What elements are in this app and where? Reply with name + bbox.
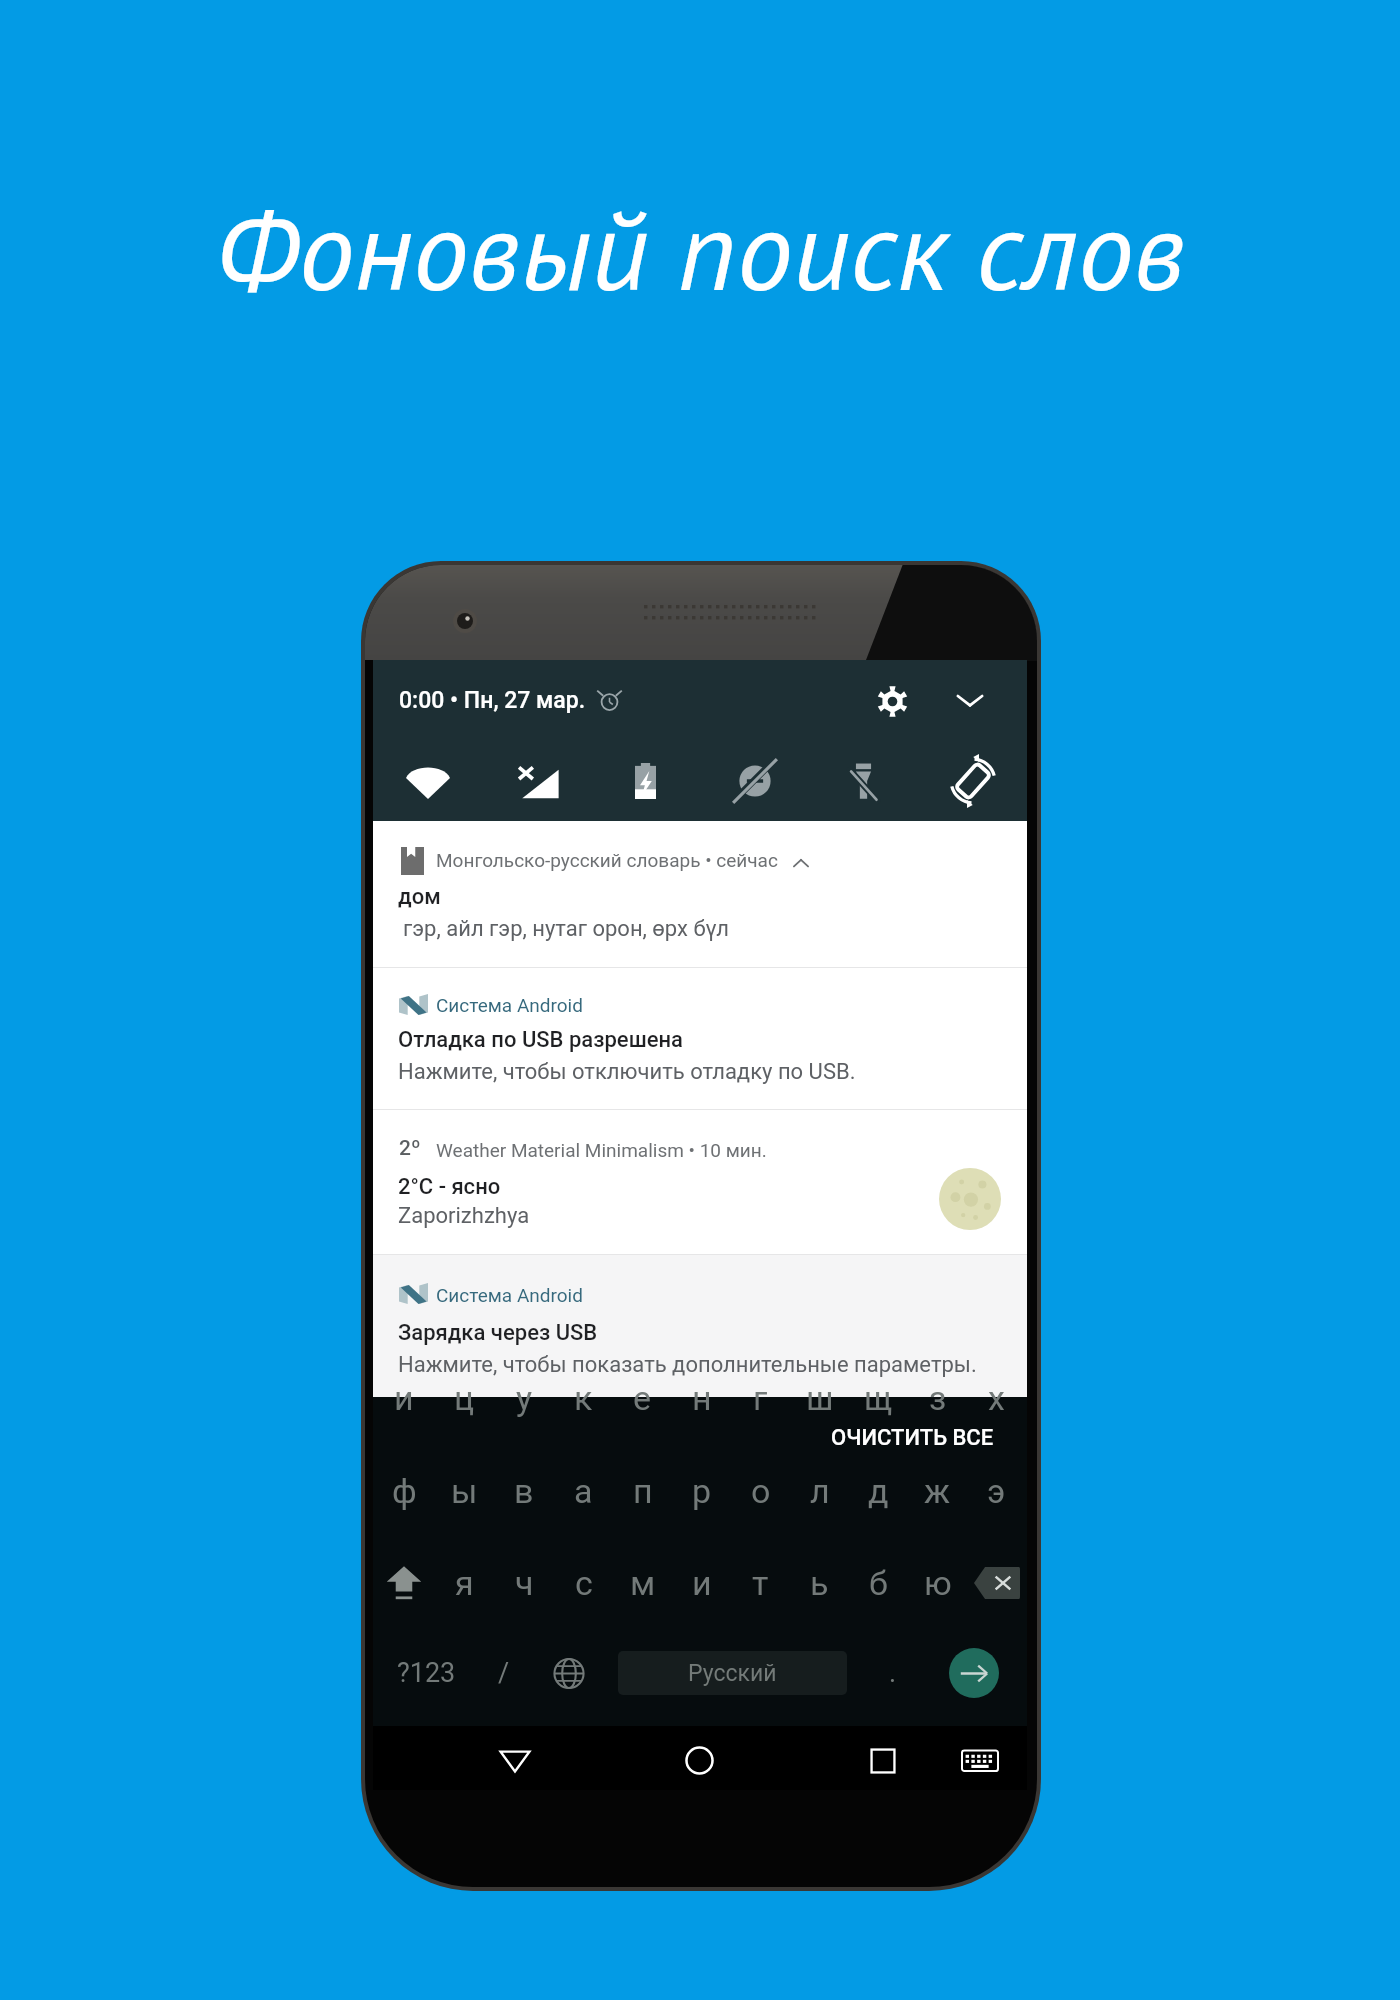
button[interactable]: Battery — [591, 741, 700, 821]
staticText: Монгольско-русский словарь • сейчас — [436, 849, 778, 871]
button[interactable]: Монгольско-русский словарь • сейчас — [373, 821, 1027, 967]
button[interactable]: Change language — [544, 1643, 594, 1703]
button[interactable]: я — [434, 1559, 494, 1607]
staticText: Русский — [688, 1660, 777, 1687]
staticText: ц — [454, 1378, 475, 1418]
button[interactable]: м — [613, 1559, 672, 1607]
staticText: х — [988, 1378, 1005, 1418]
button[interactable]: 2º — [373, 1110, 1027, 1254]
button[interactable]: о — [731, 1467, 790, 1515]
button[interactable]: щ — [849, 1374, 908, 1422]
staticText: е — [633, 1378, 652, 1418]
staticText: б — [869, 1563, 888, 1603]
button[interactable]: ж — [908, 1467, 967, 1515]
button[interactable]: Система Android — [373, 1255, 1027, 1397]
button[interactable]: ч — [494, 1559, 554, 1607]
staticText: Система Android — [436, 994, 583, 1016]
staticText: Фоновый поиск слов — [0, 176, 1400, 321]
staticText: гэр, айл гэр, нутаг орон, өрх бүл — [403, 916, 729, 942]
staticText: к — [574, 1378, 593, 1418]
button[interactable]: Wi-Fi — [373, 741, 482, 821]
button[interactable]: Mobile data — [482, 741, 591, 821]
staticText: п — [633, 1471, 653, 1511]
button[interactable]: / — [484, 1643, 524, 1703]
button[interactable]: Do not disturb — [700, 741, 809, 821]
staticText: а — [574, 1471, 593, 1511]
button[interactable]: Recents — [847, 1731, 919, 1790]
button[interactable]: х — [967, 1374, 1026, 1422]
staticText: г — [753, 1378, 768, 1418]
staticText: з — [929, 1378, 947, 1418]
button[interactable]: т — [731, 1559, 790, 1607]
staticText: Отладка по USB разрешена — [398, 1027, 684, 1053]
button[interactable]: н — [672, 1374, 731, 1422]
button[interactable]: г — [731, 1374, 790, 1422]
button[interactable]: ц — [434, 1374, 494, 1422]
staticText: в — [514, 1471, 534, 1511]
button[interactable]: ы — [434, 1467, 494, 1515]
staticText: и — [692, 1563, 712, 1603]
button[interactable]: р — [672, 1467, 731, 1515]
staticText: дом — [398, 884, 441, 910]
button[interactable]: Back — [479, 1731, 551, 1790]
button[interactable]: и — [672, 1559, 731, 1607]
staticText: э — [987, 1471, 1006, 1511]
staticText: т — [752, 1563, 769, 1603]
staticText: ж — [924, 1471, 951, 1511]
button[interactable]: л — [790, 1467, 849, 1515]
staticText: ф — [392, 1471, 417, 1511]
button[interactable]: Система Android — [373, 968, 1027, 1109]
button[interactable]: . — [873, 1643, 913, 1703]
button[interactable]: Auto rotate — [918, 741, 1027, 821]
button[interactable]: Русский — [618, 1651, 847, 1695]
staticText: ь — [810, 1563, 829, 1603]
button[interactable]: Settings — [861, 670, 923, 732]
button[interactable]: ?123 — [395, 1643, 457, 1703]
staticText: ?123 — [397, 1657, 456, 1689]
button[interactable]: ш — [790, 1374, 849, 1422]
staticText: ю — [924, 1563, 952, 1603]
staticText: . — [889, 1657, 897, 1689]
button[interactable]: в — [494, 1467, 554, 1515]
button[interactable]: б — [849, 1559, 908, 1607]
staticText: 2º — [399, 1136, 421, 1161]
button[interactable]: п — [613, 1467, 672, 1515]
staticText: 0:00 • Пн, 27 мар. — [399, 687, 586, 714]
button[interactable]: е — [613, 1374, 672, 1422]
button[interactable]: у — [494, 1374, 554, 1422]
button[interactable]: Keyboard — [948, 1731, 1012, 1790]
staticText: л — [810, 1471, 830, 1511]
staticText: у — [516, 1378, 533, 1418]
button[interactable]: ь — [790, 1559, 849, 1607]
button[interactable]: Backspace — [967, 1559, 1026, 1607]
button[interactable]: э — [967, 1467, 1026, 1515]
staticText: р — [692, 1471, 712, 1511]
button[interactable]: с — [554, 1559, 613, 1607]
button[interactable]: а — [554, 1467, 613, 1515]
staticText: / — [498, 1657, 510, 1689]
button[interactable]: Enter — [949, 1648, 999, 1698]
staticText: щ — [864, 1378, 893, 1418]
button[interactable]: Flashlight — [809, 741, 918, 821]
button[interactable]: ОЧИСТИТЬ ВСЕ — [831, 1425, 994, 1451]
staticText: я — [455, 1563, 474, 1603]
staticText: д — [868, 1471, 889, 1511]
staticText: Zaporizhzhya — [398, 1203, 530, 1229]
staticText: Нажмите, чтобы отключить отладку по USB. — [398, 1059, 856, 1085]
button[interactable]: и — [374, 1374, 434, 1422]
staticText: Weather Material Minimalism • 10 мин. — [436, 1139, 767, 1161]
button[interactable]: Home — [663, 1731, 735, 1790]
staticText: с — [575, 1563, 593, 1603]
staticText: н — [692, 1378, 712, 1418]
button[interactable]: Collapse — [939, 670, 1001, 732]
button[interactable]: к — [554, 1374, 613, 1422]
button[interactable]: ю — [908, 1559, 967, 1607]
button[interactable]: Shift — [374, 1559, 434, 1607]
button[interactable]: ф — [374, 1467, 434, 1515]
staticText: ш — [806, 1378, 834, 1418]
staticText: о — [751, 1471, 771, 1511]
staticText: ОЧИСТИТЬ ВСЕ — [831, 1425, 994, 1451]
staticText: Система Android — [436, 1284, 583, 1306]
button[interactable]: д — [849, 1467, 908, 1515]
button[interactable]: з — [908, 1374, 967, 1422]
